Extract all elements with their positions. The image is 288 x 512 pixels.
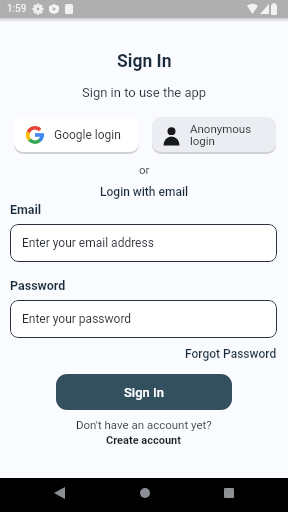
button[interactable]: Google login	[14, 117, 139, 152]
staticText: Sign in to use the app	[82, 85, 207, 100]
staticText: Password	[10, 278, 66, 293]
staticText: Anonymous login	[190, 122, 252, 148]
button[interactable]	[54, 487, 65, 499]
staticText: Sign In	[124, 385, 164, 400]
staticText: or	[139, 163, 150, 176]
button[interactable]: Enter your password	[10, 300, 277, 338]
staticText: Enter your email address	[22, 236, 154, 250]
staticText: Email	[10, 202, 42, 217]
staticText: Sign In	[117, 51, 172, 72]
button[interactable]: Sign In	[56, 374, 232, 410]
button[interactable]: Forgot Password	[185, 347, 277, 361]
staticText: Enter your password	[22, 312, 132, 326]
staticText: Login with email	[100, 185, 189, 199]
staticText: 1:59	[7, 3, 27, 15]
button[interactable]: Create account	[106, 434, 182, 447]
button[interactable]	[224, 488, 234, 498]
staticText: Google login	[54, 128, 121, 142]
button[interactable]: Enter your email address	[10, 224, 277, 262]
button[interactable]	[140, 488, 150, 498]
staticText: Don't have an account yet?	[76, 418, 212, 431]
button[interactable]: Anonymous login	[152, 117, 276, 152]
